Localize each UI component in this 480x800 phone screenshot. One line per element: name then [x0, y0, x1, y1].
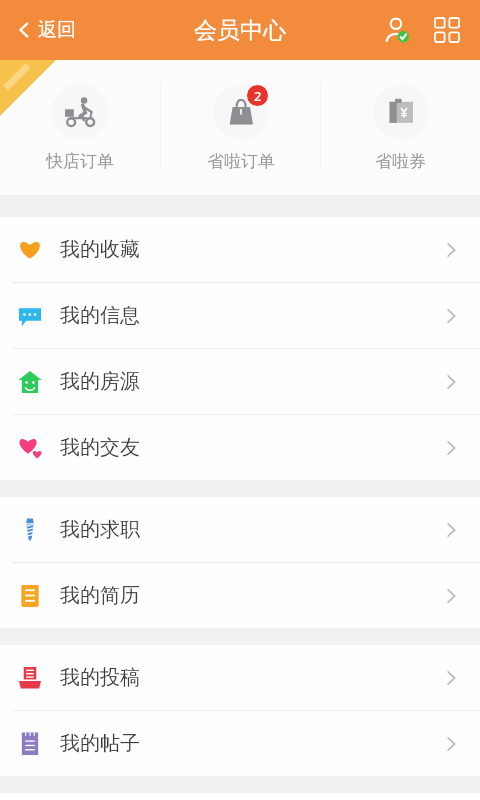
staticText: 我的投稿 [60, 665, 140, 690]
staticText: 我的求职 [60, 517, 140, 542]
staticText: 返回 [38, 18, 76, 42]
staticText: 我的帖子 [60, 731, 140, 756]
staticText: 我的房源 [60, 369, 140, 394]
button[interactable]: 2 [161, 60, 320, 195]
button[interactable]: Grid menu [428, 11, 466, 49]
staticText: 省啦订单 [207, 151, 275, 172]
button[interactable]: 我的房源 [0, 349, 480, 414]
button[interactable]: 我的交友 [0, 415, 480, 480]
staticText: 我的简历 [60, 583, 140, 608]
staticText: 省啦券 [375, 151, 426, 172]
button[interactable]: 我的求职 [0, 497, 480, 562]
button[interactable]: 我的投稿 [0, 645, 480, 710]
button[interactable]: Account verified [378, 11, 416, 49]
staticText: 会员中心 [194, 16, 286, 45]
staticText: 我的交友 [60, 435, 140, 460]
button[interactable]: 省啦券 [321, 60, 480, 195]
staticText: 我的收藏 [60, 237, 140, 262]
staticText: 2 [254, 87, 262, 105]
button[interactable]: 返回 [10, 12, 82, 48]
button[interactable]: 我的信息 [0, 283, 480, 348]
button[interactable]: 我的收藏 [0, 217, 480, 282]
button[interactable]: 我的简历 [0, 563, 480, 628]
button[interactable]: 我的帖子 [0, 711, 480, 776]
staticText: 我的信息 [60, 303, 140, 328]
staticText: 快店订单 [46, 151, 114, 172]
button[interactable]: 快店订单 [0, 60, 160, 195]
